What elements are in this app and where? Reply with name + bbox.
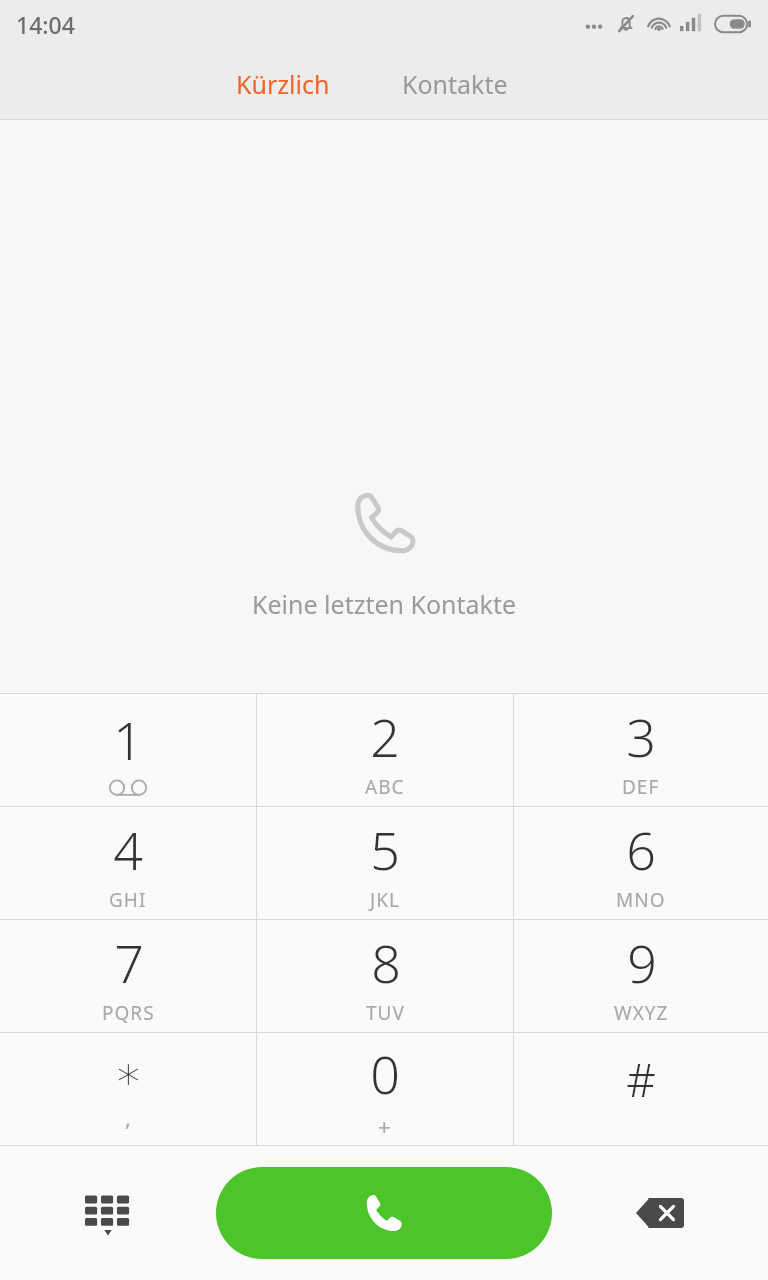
button[interactable]: 3 (514, 694, 768, 806)
staticText: 0 (370, 1038, 400, 1109)
staticText: WXYZ (614, 1000, 669, 1026)
staticText: # (626, 1048, 656, 1111)
staticText: MNO (616, 887, 666, 913)
staticText: 5 (370, 814, 400, 885)
button[interactable]: Kürzlich (236, 52, 330, 116)
button[interactable]: Call (216, 1167, 552, 1259)
button[interactable]: 4 (0, 807, 256, 919)
staticText: DEF (622, 774, 660, 800)
staticText: Kürzlich (236, 67, 330, 101)
staticText: TUV (366, 1000, 405, 1026)
staticText: PQRS (102, 1000, 155, 1026)
button[interactable]: 5 (257, 807, 513, 919)
staticText: ∗ (114, 1046, 143, 1100)
staticText: 9 (627, 927, 657, 998)
button[interactable]: # (514, 1033, 768, 1145)
staticText: Keine letzten Kontakte (252, 587, 517, 621)
staticText: 7 (114, 927, 144, 998)
staticText: 2 (370, 701, 400, 772)
staticText: Kontakte (402, 67, 508, 101)
button[interactable]: 7 (0, 920, 256, 1032)
button[interactable]: 1 (0, 694, 256, 806)
button[interactable]: 9 (514, 920, 768, 1032)
button[interactable]: 6 (514, 807, 768, 919)
staticText: + (378, 1111, 392, 1141)
button[interactable]: ∗ (0, 1033, 256, 1145)
button[interactable]: Backspace (552, 1146, 768, 1280)
staticText: 14:04 (16, 9, 75, 40)
staticText: JKL (370, 887, 400, 913)
staticText: 3 (626, 701, 656, 772)
staticText: GHI (109, 887, 147, 913)
button[interactable]: 0 (257, 1033, 513, 1145)
button[interactable]: Dialpad (0, 1146, 216, 1280)
staticText: 8 (371, 927, 401, 998)
button[interactable]: 8 (257, 920, 513, 1032)
staticText: 1 (113, 704, 143, 775)
button[interactable]: Kontakte (402, 52, 508, 116)
staticText: 4 (113, 814, 143, 885)
staticText: 6 (626, 814, 656, 885)
staticText: ABC (365, 774, 405, 800)
staticText: , (125, 1102, 132, 1132)
button[interactable]: 2 (257, 694, 513, 806)
